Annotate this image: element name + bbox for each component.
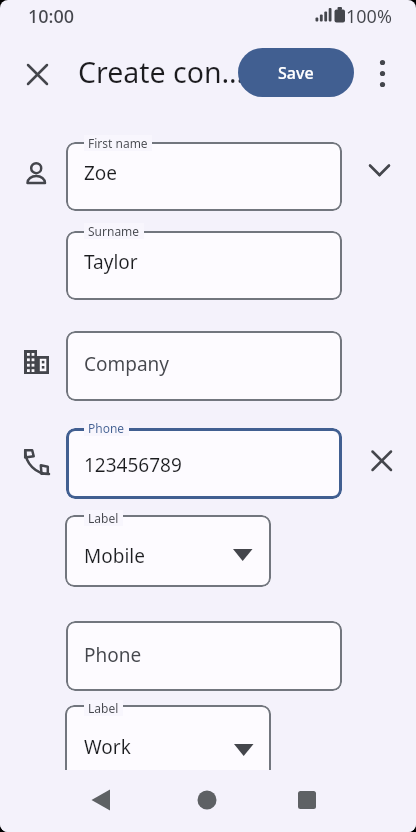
staticText: First name: [88, 135, 148, 151]
button[interactable]: [190, 783, 224, 817]
button[interactable]: Save: [238, 48, 354, 97]
staticText: 123456789: [84, 452, 182, 478]
button[interactable]: [66, 621, 342, 691]
button[interactable]: [65, 515, 271, 587]
staticText: Label: [88, 510, 119, 526]
staticText: Company: [84, 351, 170, 377]
button[interactable]: [66, 231, 342, 300]
staticText: Label: [88, 700, 119, 716]
staticText: 100%: [346, 4, 392, 29]
staticText: Phone: [84, 642, 142, 668]
staticText: Taylor: [84, 249, 138, 275]
button[interactable]: [365, 444, 398, 477]
button[interactable]: [65, 705, 271, 785]
staticText: Create con…: [78, 53, 245, 92]
button[interactable]: [84, 783, 118, 817]
button[interactable]: [66, 331, 342, 401]
button[interactable]: [66, 428, 342, 499]
button[interactable]: [66, 142, 342, 211]
staticText: Work: [84, 734, 131, 760]
button[interactable]: [366, 57, 399, 90]
staticText: 10:00: [28, 4, 75, 29]
staticText: Surname: [88, 223, 140, 239]
button[interactable]: [21, 58, 54, 91]
button[interactable]: [362, 154, 395, 187]
button[interactable]: [290, 783, 324, 817]
staticText: Mobile: [84, 543, 145, 569]
staticText: Save: [278, 62, 314, 84]
staticText: Phone: [88, 420, 125, 436]
staticText: Zoe: [84, 160, 118, 186]
